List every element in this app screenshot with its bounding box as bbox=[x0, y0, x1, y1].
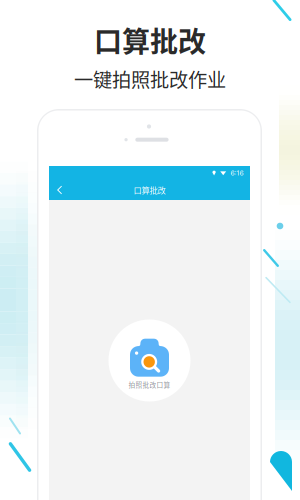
staticText: 6:16 bbox=[231, 169, 244, 177]
button[interactable]: Back bbox=[53, 180, 67, 200]
staticText: 口算批改 bbox=[94, 20, 206, 60]
button[interactable]: 拍照批改口算 bbox=[108, 319, 190, 401]
staticText: 拍照批改口算 bbox=[128, 380, 170, 389]
staticText: 一键拍照批改作业 bbox=[74, 65, 226, 93]
staticText: 口算批改 bbox=[133, 184, 165, 196]
